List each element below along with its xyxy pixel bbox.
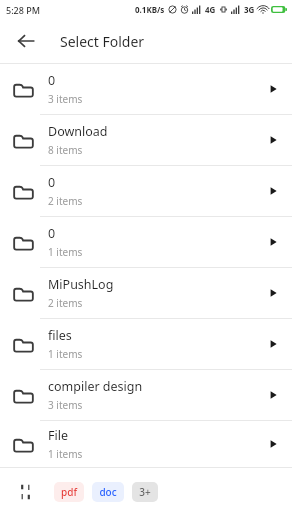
button[interactable]: MiPushLog [0,268,292,318]
staticText: 3 items [48,398,83,412]
staticText: 1 items [48,245,83,259]
staticText: pdf [61,485,77,499]
staticText: Select Folder [60,32,145,51]
staticText: File [48,427,68,444]
staticText: 2 items [48,296,83,310]
staticText: compiler design [48,378,143,395]
staticText: files [48,327,72,344]
button[interactable]: 0 [0,64,292,114]
staticText: 3G [244,4,255,15]
staticText: Download [48,123,108,140]
button[interactable]: doc [92,482,124,502]
button[interactable]: 0 [0,217,292,267]
button[interactable]: pdf [54,482,84,502]
staticText: 0 [48,225,56,242]
button[interactable]: Download [0,115,292,165]
button[interactable]: compiler design [0,370,292,420]
button[interactable]: Sort [10,477,40,507]
staticText: 0 [48,174,56,191]
staticText: 2 items [48,194,83,208]
staticText: 5:28 PM [6,4,40,16]
staticText: doc [99,485,117,499]
button[interactable]: 0 [0,166,292,216]
staticText: 0.1KB/s [135,4,165,15]
staticText: 3 items [48,92,83,106]
staticText: 0 [48,72,56,89]
staticText: 1 items [48,447,83,461]
button[interactable]: File [0,421,292,467]
staticText: 4G [205,4,216,15]
button[interactable]: Back [8,23,44,59]
staticText: 3+ [139,485,151,499]
staticText: 8 items [48,143,83,157]
staticText: MiPushLog [48,276,114,293]
button[interactable]: files [0,319,292,369]
staticText: 1 items [48,347,83,361]
button[interactable]: 3+ [132,482,158,502]
